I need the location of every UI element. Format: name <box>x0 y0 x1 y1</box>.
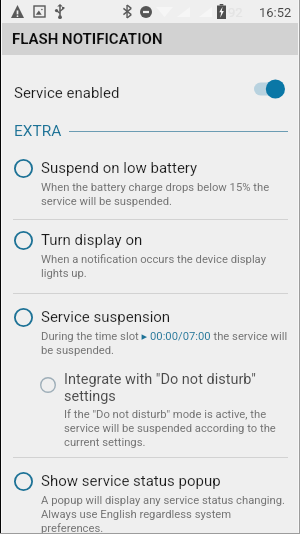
button[interactable]: Service suspension <box>0 309 300 357</box>
staticText: Service enabled <box>14 84 120 102</box>
staticText: During the time slot ▸ 00:00/07:00 the s… <box>41 329 289 357</box>
staticText: A popup will display any service status … <box>41 493 289 534</box>
button[interactable]: Turn display on <box>0 232 300 280</box>
staticText: Turn display on <box>41 232 143 249</box>
button[interactable]: Toggle service enabled <box>254 79 285 99</box>
staticText: Service suspension <box>41 309 171 326</box>
staticText: Integrate with "Do not disturb" settings <box>64 371 289 405</box>
staticText: When the battery charge drops below 15% … <box>41 180 289 208</box>
staticText: FLASH NOTIFICATION <box>12 30 163 48</box>
button[interactable]: Show service status popup <box>0 473 300 534</box>
button[interactable]: Service enabled <box>0 55 300 121</box>
staticText: 92 <box>228 5 243 20</box>
button[interactable]: Suspend on low battery <box>0 160 300 208</box>
button[interactable]: Integrate with "Do not disturb" settings <box>0 371 300 449</box>
staticText: If the "Do not disturb" mode is active, … <box>64 407 289 449</box>
staticText: Show service status popup <box>41 473 221 490</box>
staticText: 16:52 <box>259 5 292 20</box>
staticText: Suspend on low battery <box>41 160 198 177</box>
staticText: EXTRA <box>14 122 62 140</box>
staticText: When a notification occurs the device di… <box>41 252 289 280</box>
